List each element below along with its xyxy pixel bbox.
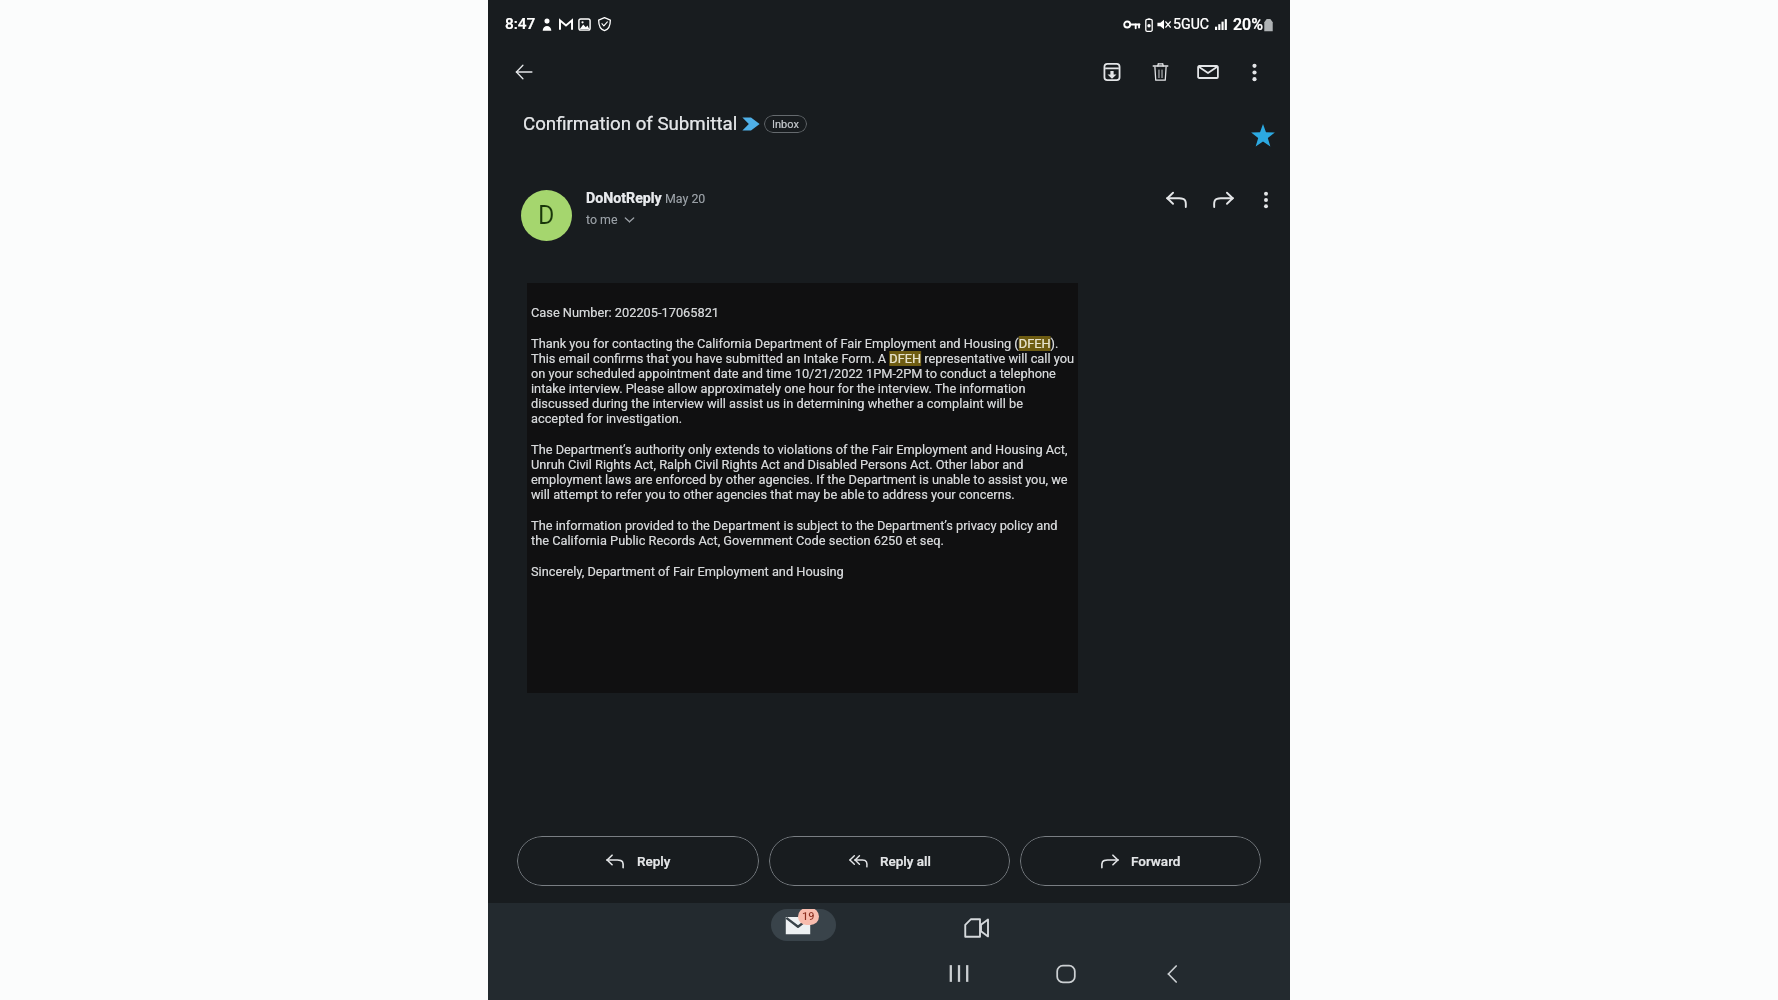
button[interactable]: Recent apps: [935, 950, 983, 997]
staticText: Confirmation of Submittal: [523, 113, 738, 135]
staticText: Case Number: 202205-17065821: [531, 305, 720, 320]
staticText: D: [538, 201, 555, 230]
button[interactable]: Reply: [517, 836, 759, 886]
button[interactable]: Mark unread: [1184, 48, 1232, 96]
button[interactable]: Meet: [951, 903, 1001, 953]
staticText: 20%: [1233, 15, 1263, 34]
staticText: 8:47: [505, 15, 536, 33]
staticText: Thank you for contacting the California …: [531, 336, 1077, 426]
staticText: Forward: [1131, 853, 1181, 869]
button[interactable]: Delete: [1136, 48, 1184, 96]
button[interactable]: Forward: [1020, 836, 1261, 886]
button[interactable]: Mail: [771, 909, 836, 941]
button[interactable]: More options: [1232, 50, 1276, 94]
staticText: to me: [586, 212, 618, 227]
staticText: The Department’s authority only extends …: [531, 442, 1077, 502]
staticText: DoNotReply: [586, 190, 662, 207]
button[interactable]: Back: [1148, 950, 1196, 997]
button[interactable]: Sender avatar: [521, 190, 572, 241]
button[interactable]: More options: [1246, 180, 1286, 220]
staticText: 19: [802, 910, 815, 923]
button[interactable]: Home: [1042, 950, 1090, 997]
button[interactable]: Reply: [1154, 177, 1200, 223]
staticText: Reply: [637, 853, 671, 869]
button[interactable]: Archive: [1088, 48, 1136, 96]
staticText: The information provided to the Departme…: [531, 518, 1077, 548]
button[interactable]: Starred: [1241, 113, 1285, 157]
staticText: Inbox: [772, 118, 799, 131]
staticText: 5GUC: [1173, 16, 1210, 33]
staticText: May 20: [665, 191, 706, 206]
button[interactable]: Back: [500, 48, 548, 96]
staticText: Sincerely, Department of Fair Employment…: [531, 564, 844, 579]
button[interactable]: Forward: [1200, 177, 1246, 223]
button[interactable]: Reply all: [769, 836, 1010, 886]
staticText: Reply all: [880, 853, 931, 869]
button[interactable]: to me: [586, 212, 635, 227]
